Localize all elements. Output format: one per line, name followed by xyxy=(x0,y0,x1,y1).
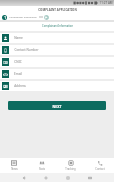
staticText: 1 xyxy=(4,16,6,20)
staticText: Complainant Information xyxy=(9,16,37,19)
staticText: Stats xyxy=(39,167,45,171)
staticText: Name xyxy=(14,36,23,40)
staticText: Address xyxy=(14,84,26,88)
staticText: Contact xyxy=(95,167,105,171)
staticText: 2 xyxy=(46,16,48,20)
button[interactable]: CNIC xyxy=(0,57,114,67)
button[interactable]: Menu xyxy=(79,173,101,182)
button[interactable]: NEXT xyxy=(8,101,106,110)
button[interactable]: Tracking xyxy=(56,158,85,173)
button[interactable]: Recents xyxy=(57,173,79,182)
staticText: 11:27 AM xyxy=(99,1,113,5)
button[interactable]: Email xyxy=(0,69,114,79)
staticText: Email xyxy=(14,72,22,76)
button[interactable]: Home xyxy=(35,173,57,182)
button[interactable]: Name xyxy=(0,33,114,43)
button[interactable]: News xyxy=(0,158,28,173)
button[interactable]: Address xyxy=(0,81,114,91)
staticText: CNIC xyxy=(14,60,22,64)
staticText: Complainant Information xyxy=(42,24,73,28)
staticText: COMPLAINT APPLICATION xyxy=(38,8,77,12)
staticText: Tracking xyxy=(65,167,76,171)
staticText: News xyxy=(11,167,18,171)
staticText: Contact Number xyxy=(14,48,39,52)
staticText: NEXT xyxy=(52,104,62,108)
button[interactable]: Stats xyxy=(28,158,56,173)
button[interactable]: Contact Number xyxy=(0,45,114,55)
button[interactable]: Contact xyxy=(85,158,114,173)
button[interactable]: Back xyxy=(13,173,35,182)
